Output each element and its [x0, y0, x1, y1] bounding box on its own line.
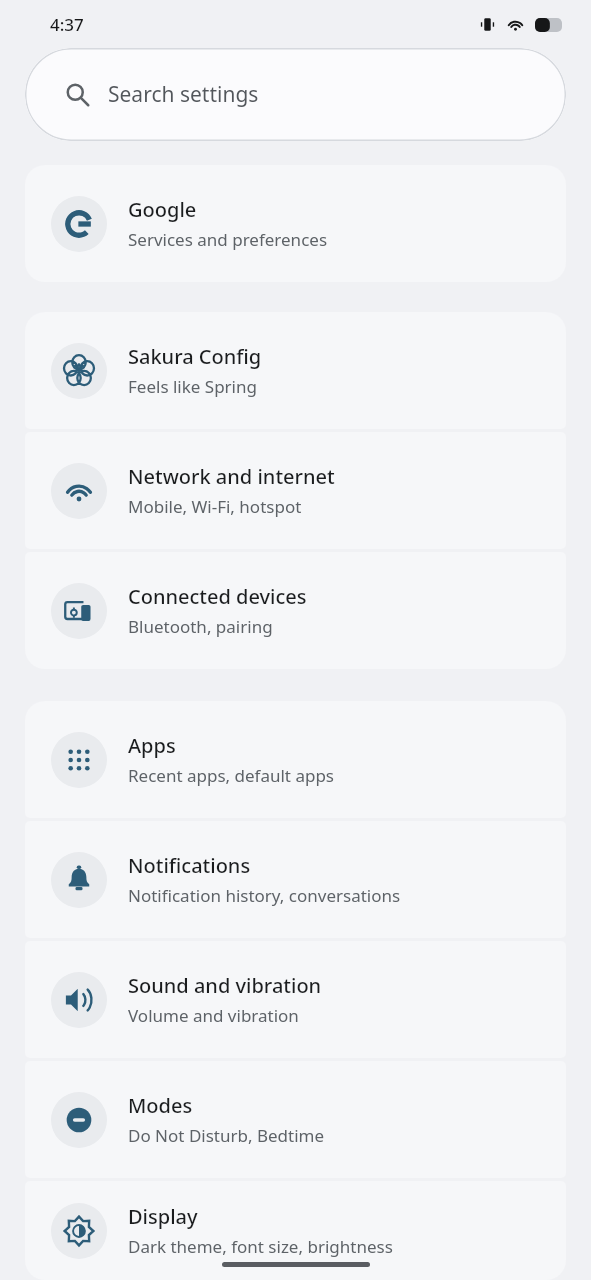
button[interactable]: Sound and vibration [25, 941, 566, 1058]
staticText: Volume and vibration [128, 1004, 299, 1027]
staticText: Network and internet [128, 463, 335, 490]
staticText: Dark theme, font size, brightness [128, 1235, 393, 1258]
button[interactable]: Search settings [25, 48, 566, 141]
button[interactable]: Network and internet [25, 432, 566, 549]
staticText: Services and preferences [128, 228, 328, 251]
staticText: Search settings [108, 80, 259, 109]
staticText: Mobile, Wi-Fi, hotspot [128, 495, 302, 518]
staticText: Sound and vibration [128, 972, 322, 999]
staticText: Do Not Disturb, Bedtime [128, 1124, 325, 1147]
button[interactable]: Display [25, 1181, 566, 1280]
staticText: Sakura Config [128, 343, 262, 370]
staticText: 4:37 [50, 13, 84, 36]
button[interactable]: Modes [25, 1061, 566, 1178]
staticText: Apps [128, 732, 176, 759]
staticText: Recent apps, default apps [128, 764, 335, 787]
button[interactable]: Google [25, 165, 566, 282]
staticText: Notifications [128, 852, 251, 879]
staticText: Notification history, conversations [128, 884, 401, 907]
other: Battery [535, 18, 562, 32]
staticText: Modes [128, 1092, 193, 1119]
staticText: Connected devices [128, 583, 307, 610]
staticText: Display [128, 1203, 198, 1230]
staticText: Feels like Spring [128, 375, 257, 398]
button[interactable]: Sakura Config [25, 312, 566, 429]
other: Wi-Fi [506, 15, 525, 34]
button[interactable]: Connected devices [25, 552, 566, 669]
button[interactable]: Notifications [25, 821, 566, 938]
button[interactable]: Apps [25, 701, 566, 818]
staticText: Google [128, 196, 197, 223]
staticText: Bluetooth, pairing [128, 615, 273, 638]
other: Vibrate [479, 16, 496, 33]
